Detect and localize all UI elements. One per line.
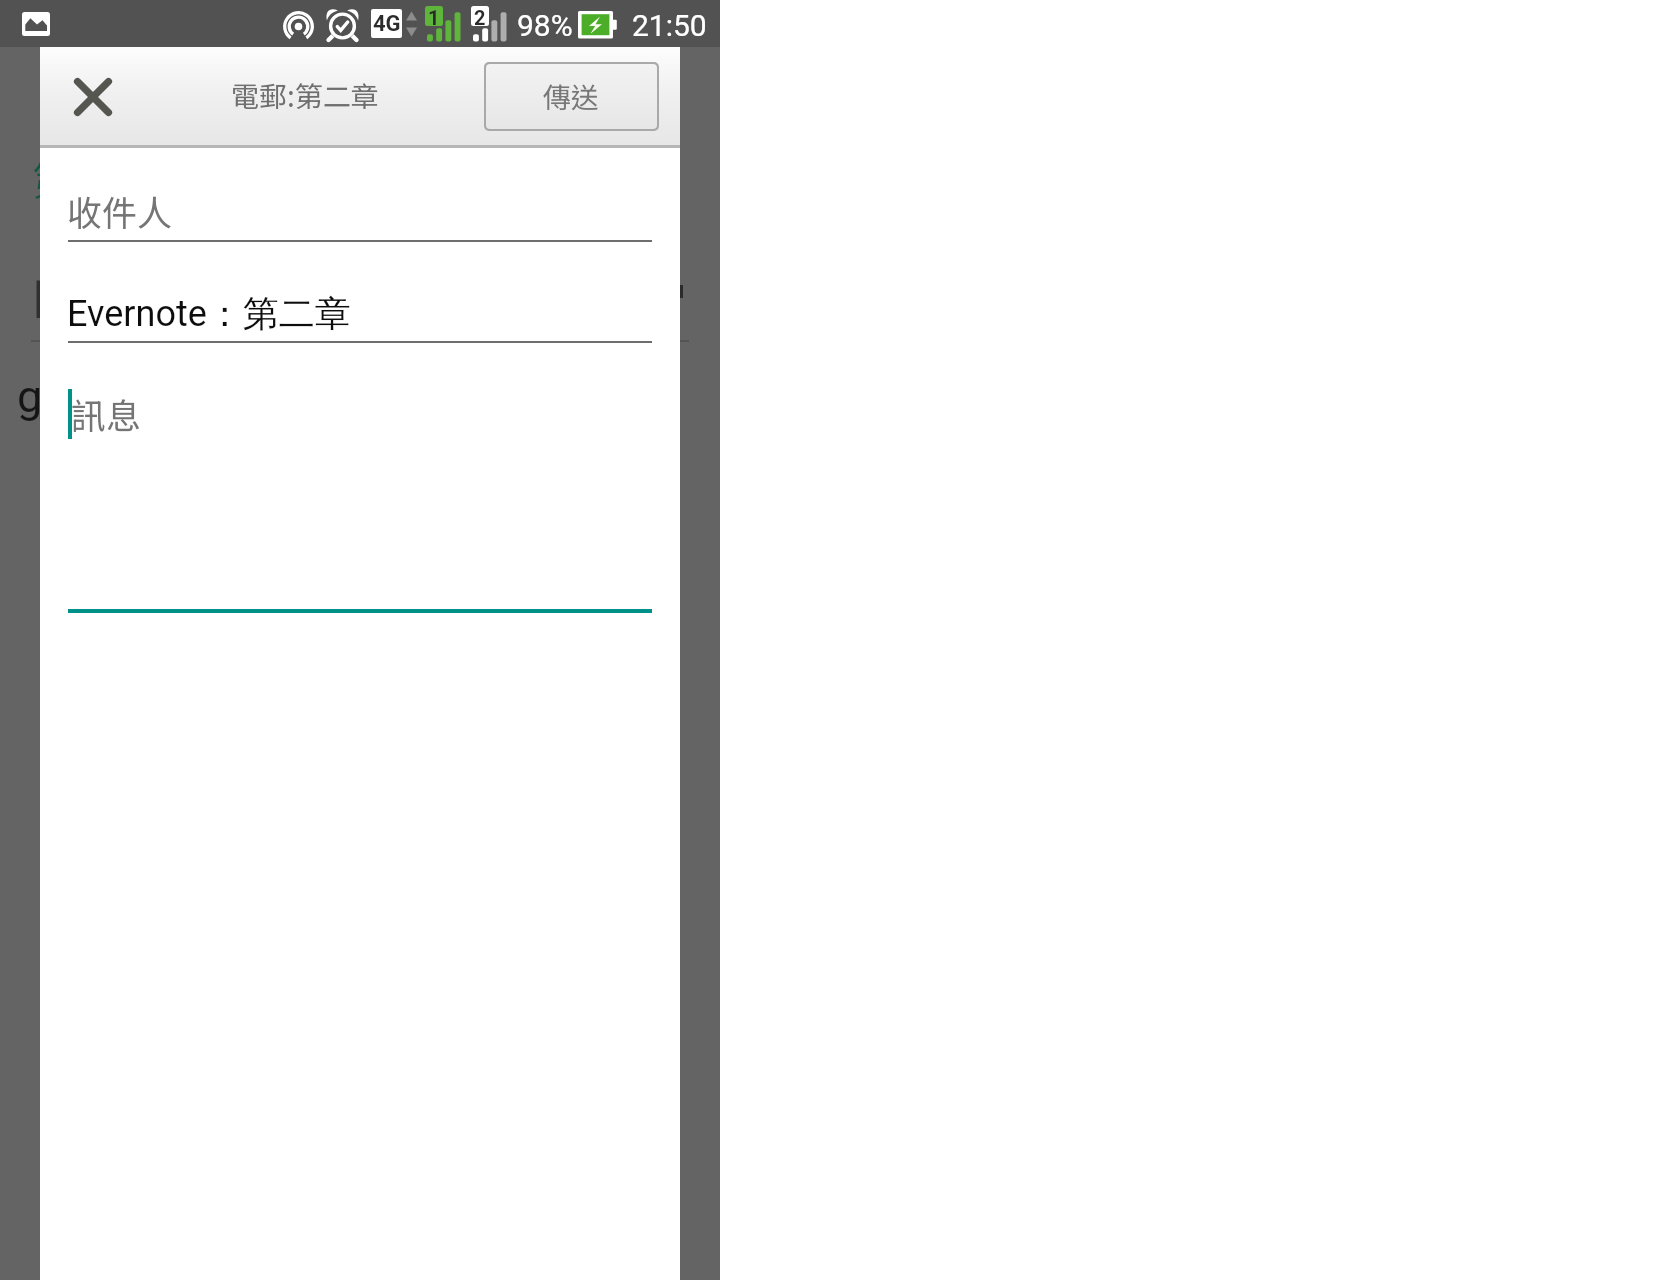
staticText: 電郵:第二章: [231, 75, 379, 116]
button[interactable]: Close: [48, 47, 138, 147]
other: Battery charging, 98 percent: [578, 11, 618, 39]
staticText: 傳送: [543, 76, 600, 117]
button[interactable]: Evernote：第二章: [68, 262, 652, 341]
button[interactable]: 訊息: [68, 367, 652, 609]
staticText: 21:50: [632, 8, 707, 43]
staticText: 2: [474, 6, 486, 26]
other: Alarm set: [324, 6, 362, 44]
staticText: b: [33, 272, 62, 331]
staticText: 4G: [373, 11, 401, 37]
staticText: Evernote：第二章: [67, 291, 351, 336]
other: Mobile hotspot on: [283, 10, 314, 41]
staticText: 1: [428, 6, 440, 26]
staticText: 訊息: [71, 388, 142, 439]
button[interactable]: 傳送: [486, 64, 657, 129]
other: Screenshot captured: [22, 12, 50, 36]
staticText: gm: [17, 370, 82, 423]
staticText: 98%: [517, 8, 573, 43]
staticText: 收件人: [67, 185, 173, 236]
staticText: 第: [32, 150, 72, 208]
button[interactable]: 收件人: [68, 162, 652, 242]
